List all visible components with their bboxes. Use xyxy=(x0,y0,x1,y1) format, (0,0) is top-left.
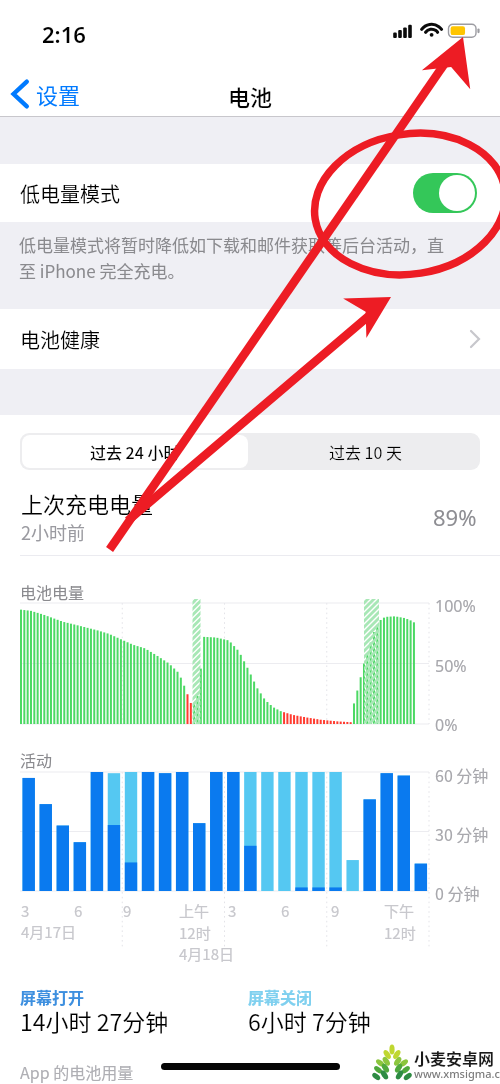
staticText: 上次充电电量 xyxy=(21,487,154,519)
staticText: 14小时 27分钟 xyxy=(20,1004,169,1037)
staticText: 过去 24 小时 xyxy=(90,440,180,463)
staticText: 屏幕打开 xyxy=(20,985,85,1008)
staticText: 3 xyxy=(21,900,30,922)
staticText: 电池 xyxy=(228,80,273,112)
staticText: 50% xyxy=(435,655,467,677)
button[interactable]: 低电量模式开关 xyxy=(413,173,477,213)
staticText: 低电量模式 xyxy=(20,179,120,208)
staticText: 上午 12时 xyxy=(179,900,211,943)
staticText: 9 xyxy=(331,900,340,922)
staticText: www.xmsigma.com xyxy=(414,1066,500,1081)
staticText: 9 xyxy=(123,900,132,922)
staticText: 6 xyxy=(281,900,290,922)
staticText: 2小时前 xyxy=(21,519,85,545)
button[interactable]: 设置 xyxy=(10,78,76,110)
staticText: 活动 xyxy=(20,748,53,771)
staticText: 4月17日 xyxy=(21,921,76,943)
button[interactable]: 过去 24 小时 xyxy=(22,435,248,468)
staticText: 3 xyxy=(228,900,237,922)
staticText: 电池健康 xyxy=(20,325,100,354)
staticText: 屏幕关闭 xyxy=(248,985,313,1008)
staticText: 0 分钟 xyxy=(435,881,480,904)
staticText: 设置 xyxy=(36,78,81,110)
staticText: 电池电量 xyxy=(20,580,85,603)
staticText: 下午 12时 xyxy=(384,900,416,943)
staticText: 0% xyxy=(435,714,458,736)
staticText: 低电量模式将暂时降低如下载和邮件获取等后台活动，直 至 iPhone 完全充电。 xyxy=(19,232,444,283)
button[interactable]: 电池健康 xyxy=(0,309,500,369)
staticText: App 的电池用量 xyxy=(20,1060,134,1083)
staticText: 过去 10 天 xyxy=(329,440,402,463)
button[interactable]: 过去 10 天 xyxy=(250,433,480,470)
staticText: 2:16 xyxy=(42,19,86,49)
staticText: 4月18日 xyxy=(179,943,234,965)
staticText: 100% xyxy=(435,595,476,617)
staticText: 6 xyxy=(74,900,83,922)
staticText: 30 分钟 xyxy=(435,822,489,845)
staticText: 60 分钟 xyxy=(435,763,489,786)
button[interactable]: 低电量模式 xyxy=(0,164,500,222)
staticText: 小麦安卓网 xyxy=(414,1046,495,1069)
staticText: 89% xyxy=(433,502,477,532)
staticText: 6小时 7分钟 xyxy=(248,1004,371,1037)
